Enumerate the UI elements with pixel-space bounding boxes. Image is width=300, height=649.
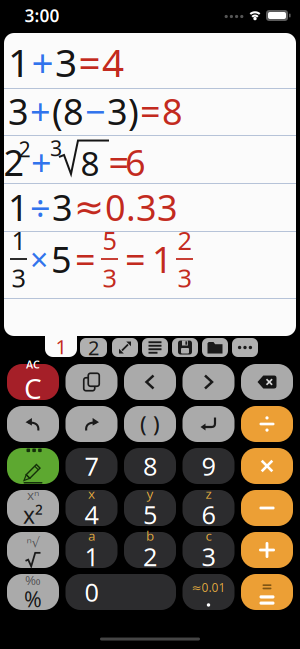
staticText: 3 [52,183,73,231]
staticText: 2 [3,138,24,186]
staticText: 1 [152,235,173,283]
staticText: ⁿ√ [26,533,39,551]
staticText: 5 [102,223,116,257]
staticText: + [30,87,51,135]
staticText: 7 [84,449,98,483]
staticText: 6 [201,497,215,531]
staticText: 3) [107,87,139,135]
staticText: − [85,87,106,135]
staticText: 3:00 [24,4,59,27]
staticText: = [108,138,129,186]
staticText: xⁿ [27,486,39,504]
staticText: ÷ [30,183,51,231]
staticText: 9 [201,449,215,483]
staticText: b [146,527,154,544]
staticText: 2 [18,135,30,163]
staticText: = [140,87,161,135]
staticText: % [24,585,42,613]
staticText: (8 [52,87,84,135]
staticText: 2 [143,539,157,573]
staticText: 3 [8,87,29,135]
staticText: ( ) [140,410,160,438]
staticText: 3 [201,539,215,573]
staticText: AC [26,357,40,371]
staticText: 2 [177,223,191,257]
staticText: = [75,235,96,283]
staticText: 0.33 [105,183,178,231]
staticText: 1 [8,183,29,231]
staticText: 3 [50,134,62,162]
staticText: 1 [84,539,98,573]
staticText: 3 [102,261,116,294]
staticText: 4 [102,36,124,88]
staticText: 5 [51,235,72,283]
staticText: a [88,527,95,544]
staticText: 4 [84,497,98,531]
staticText: ‰ [25,571,41,589]
staticText: 8 [162,87,183,135]
staticText: 8 [80,141,99,185]
staticText: ≈0.01 [191,579,225,595]
staticText: z [205,485,211,502]
staticText: 1 [8,36,30,88]
staticText: C [24,369,42,407]
staticText: × [30,238,48,280]
staticText: + [31,36,53,88]
staticText: 6 [125,138,146,186]
staticText: 2 [88,334,99,361]
staticText: = [78,36,100,88]
staticText: x [88,485,95,502]
staticText: c [205,527,211,544]
staticText: 8 [143,449,157,483]
staticText: y [146,485,153,502]
staticText: 1 [11,223,25,257]
staticText: 5 [143,497,157,531]
staticText: 3 [177,261,191,294]
staticText: = [125,235,146,283]
staticText: ≈ [74,187,104,227]
staticText: 1 [55,333,66,360]
staticText: 3 [11,261,25,294]
staticText: 0 [84,575,98,609]
staticText: + [31,138,52,186]
staticText: x² [23,500,43,530]
staticText: 3 [55,36,77,88]
